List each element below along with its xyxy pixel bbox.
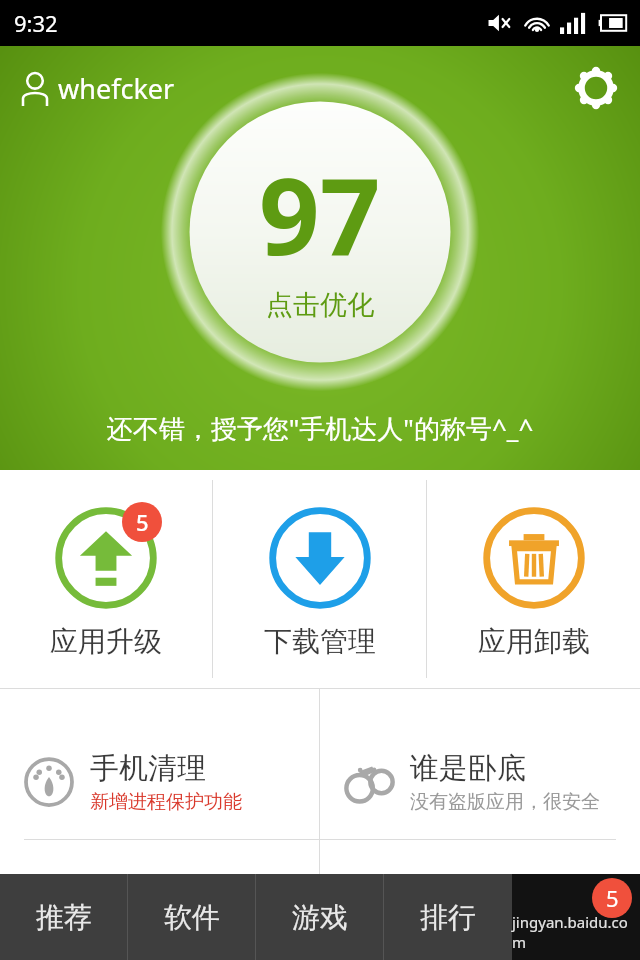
staticText: 还不错，授予您"手机达人"的称号^_^: [0, 410, 640, 446]
staticText: 下载管理: [264, 624, 376, 659]
staticText: 新增进程保护功能: [90, 790, 242, 814]
staticText: 97: [259, 142, 381, 286]
staticText: 5: [606, 883, 619, 913]
button[interactable]: 排行: [384, 874, 512, 960]
staticText: 应用升级: [50, 624, 162, 659]
button[interactable]: 软件: [128, 874, 256, 960]
staticText: 谁是卧底: [410, 750, 526, 787]
button[interactable]: 手机清理: [0, 689, 319, 874]
staticText: 应用卸载: [478, 624, 590, 659]
staticText: jingyan.baidu.com: [512, 912, 640, 952]
button[interactable]: whefcker: [16, 66, 179, 111]
staticText: 排行: [420, 900, 476, 935]
staticText: whefcker: [58, 70, 175, 107]
button[interactable]: 下载管理: [213, 470, 426, 688]
staticText: 5: [136, 507, 149, 537]
staticText: 9:32: [14, 8, 58, 38]
staticText: 游戏: [292, 900, 348, 935]
button[interactable]: 推荐: [0, 874, 128, 960]
staticText: 软件: [164, 900, 220, 935]
button[interactable]: 游戏: [256, 874, 384, 960]
button[interactable]: 5: [0, 470, 212, 688]
button[interactable]: Settings: [568, 60, 624, 116]
staticText: 点击优化: [266, 288, 374, 322]
button[interactable]: 应用卸载: [427, 470, 640, 688]
staticText: 手机清理: [90, 750, 206, 787]
button[interactable]: 谁是卧底: [320, 689, 640, 874]
button[interactable]: More: [512, 874, 640, 960]
staticText: 推荐: [36, 900, 92, 935]
staticText: 没有盗版应用，很安全: [410, 790, 600, 814]
